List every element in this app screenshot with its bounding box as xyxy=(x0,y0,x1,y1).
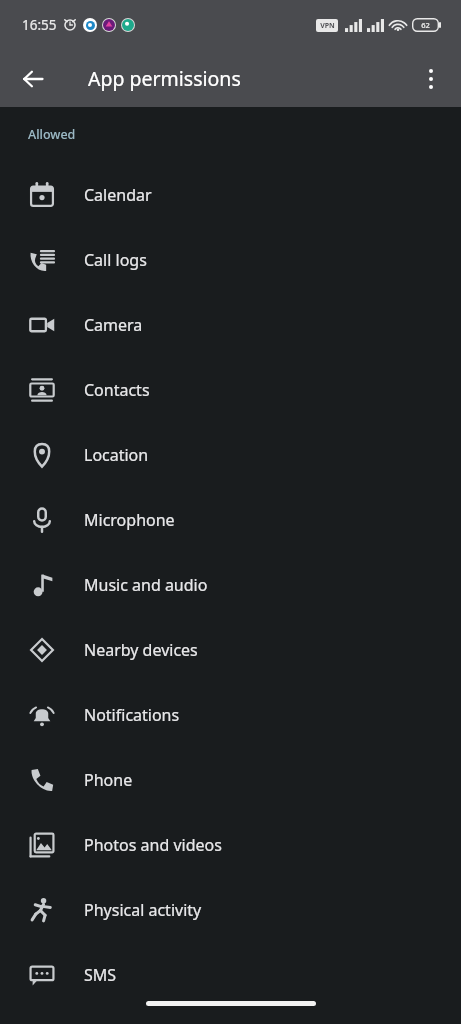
button[interactable]: Calendar xyxy=(0,162,461,227)
button[interactable]: Contacts xyxy=(0,357,461,422)
staticText: Calendar xyxy=(84,184,152,206)
staticText: Microphone xyxy=(84,509,175,531)
staticText: 16:55 xyxy=(22,16,57,34)
staticText: Physical activity xyxy=(84,899,202,921)
staticText: Contacts xyxy=(84,379,150,401)
staticText: Location xyxy=(84,444,149,466)
staticText: VPN xyxy=(320,21,335,31)
button[interactable]: SMS xyxy=(0,942,461,1007)
button[interactable]: Phone xyxy=(0,747,461,812)
staticText: App permissions xyxy=(88,65,241,92)
button[interactable]: Location xyxy=(0,422,461,487)
button[interactable]: Back xyxy=(11,57,55,101)
staticText: Notifications xyxy=(84,704,180,726)
staticText: Call logs xyxy=(84,249,147,271)
button[interactable]: Photos and videos xyxy=(0,812,461,877)
button[interactable]: Nearby devices xyxy=(0,617,461,682)
button[interactable]: Music and audio xyxy=(0,552,461,617)
staticText: Phone xyxy=(84,769,133,791)
staticText: SMS xyxy=(84,964,117,986)
staticText: 62 xyxy=(421,20,430,30)
button[interactable]: Call logs xyxy=(0,227,461,292)
button[interactable]: Notifications xyxy=(0,682,461,747)
button[interactable]: Microphone xyxy=(0,487,461,552)
staticText: Music and audio xyxy=(84,574,208,596)
button[interactable]: Camera xyxy=(0,292,461,357)
button[interactable]: Physical activity xyxy=(0,877,461,942)
staticText: Nearby devices xyxy=(84,639,198,661)
staticText: Camera xyxy=(84,314,143,336)
staticText: Photos and videos xyxy=(84,834,222,856)
button[interactable]: More options xyxy=(409,57,453,101)
staticText: Allowed xyxy=(28,126,76,143)
